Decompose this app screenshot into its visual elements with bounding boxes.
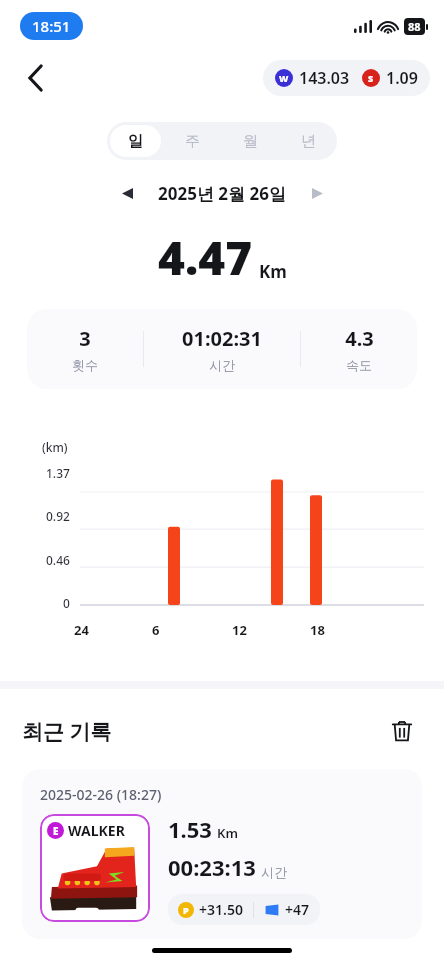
staticText: 1.37 [46, 465, 70, 481]
staticText: 년 [301, 132, 316, 151]
button[interactable]: 3 [27, 309, 417, 389]
staticText: 0 [63, 595, 70, 611]
button[interactable]: Previous day [110, 176, 144, 210]
staticText: +47 [285, 900, 310, 919]
staticText: 횟수 [72, 357, 98, 373]
staticText: 24 [74, 621, 89, 639]
staticText: 12 [232, 621, 247, 639]
staticText: 1.53 [168, 814, 212, 844]
staticText: 143.03 [299, 67, 350, 89]
button[interactable]: Delete records [382, 711, 422, 751]
staticText: 4.3 [345, 325, 374, 352]
staticText: 일 [128, 132, 143, 151]
staticText: 월 [243, 132, 258, 151]
staticText: 최근 기록 [22, 717, 112, 746]
button[interactable]: 2025-02-26 (18:27) [22, 769, 422, 939]
staticText: 주 [185, 132, 200, 151]
staticText: 2025-02-26 (18:27) [40, 785, 162, 804]
staticText: 01:02:31 [182, 325, 262, 352]
staticText: W [279, 72, 289, 84]
staticText: 18:51 [32, 16, 71, 36]
staticText: 3 [79, 325, 91, 352]
button[interactable]: 년 [282, 125, 334, 157]
staticText: 6 [152, 621, 160, 639]
staticText: E [53, 824, 59, 838]
staticText: 0.46 [46, 552, 70, 568]
button[interactable]: Next day [300, 176, 334, 210]
staticText: +31.50 [199, 900, 243, 919]
staticText: 00:23:13 [168, 852, 256, 882]
staticText: 88 [408, 19, 421, 34]
button[interactable]: 주 [167, 125, 218, 157]
staticText: WALKER [68, 821, 125, 840]
staticText: 시간 [261, 864, 287, 880]
button[interactable]: 월 [224, 125, 276, 157]
staticText: 2025년 2월 26일 [158, 182, 286, 205]
button[interactable]: W [263, 60, 430, 96]
button[interactable]: Back [14, 56, 58, 100]
staticText: 속도 [346, 357, 372, 373]
staticText: 시간 [209, 357, 235, 373]
staticText: 0.92 [46, 508, 70, 524]
staticText: P [183, 904, 189, 916]
staticText: Km [217, 824, 238, 842]
staticText: (km) [42, 439, 68, 455]
staticText: S [368, 72, 374, 84]
staticText: Km [259, 260, 287, 283]
staticText: 1.09 [386, 67, 418, 89]
button[interactable]: 일 [110, 125, 161, 157]
staticText: 4.47 [158, 226, 253, 289]
staticText: 18 [310, 621, 325, 639]
